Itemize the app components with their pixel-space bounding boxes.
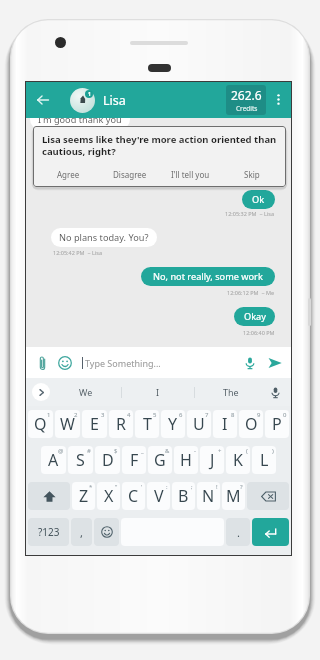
button[interactable]: The — [195, 378, 267, 406]
staticText: We — [79, 386, 93, 398]
button[interactable]: More options — [269, 90, 288, 109]
button[interactable]: X — [97, 482, 120, 510]
staticText: - — [194, 447, 196, 455]
button[interactable]: L — [252, 446, 276, 474]
staticText: O — [245, 413, 258, 435]
button[interactable]: 262.6 — [226, 85, 266, 115]
staticText: ' — [141, 483, 143, 491]
button[interactable]: E — [82, 410, 107, 438]
staticText: ! — [216, 483, 218, 491]
staticText: C — [128, 485, 139, 507]
button[interactable]: Back — [33, 90, 53, 110]
staticText: 12:06:40 PM — [243, 329, 275, 336]
staticText: K — [233, 449, 243, 471]
button[interactable]: F — [122, 446, 146, 474]
button[interactable]: Period — [226, 518, 250, 546]
button[interactable]: R — [109, 410, 133, 438]
button[interactable]: W — [55, 410, 80, 438]
staticText: Type Something... — [85, 357, 161, 369]
staticText: 4 — [127, 411, 131, 419]
button[interactable]: A — [41, 446, 66, 474]
button[interactable]: I — [122, 378, 194, 406]
staticText: # — [87, 447, 91, 455]
button[interactable]: J — [200, 446, 224, 474]
staticText: Disagree — [113, 169, 147, 180]
staticText: A — [48, 449, 59, 471]
button[interactable]: Enter — [252, 518, 289, 546]
staticText: H — [180, 449, 192, 471]
button[interactable]: Attach file — [33, 354, 51, 372]
button[interactable]: Ok — [242, 190, 275, 209]
button[interactable]: S — [68, 446, 93, 474]
button[interactable]: Comma — [71, 518, 92, 546]
staticText: Ok — [252, 193, 265, 206]
staticText: I'm good thank you — [38, 118, 122, 126]
button[interactable]: K — [226, 446, 250, 474]
staticText: U — [193, 413, 205, 435]
staticText: 1 — [88, 91, 91, 98]
staticText: D — [102, 449, 114, 471]
button[interactable]: Backspace — [247, 482, 289, 510]
button[interactable]: C — [122, 482, 145, 510]
button[interactable]: Emoji — [56, 354, 74, 372]
button[interactable]: We — [50, 378, 121, 406]
staticText: Y — [168, 413, 178, 435]
button[interactable]: Emoji — [94, 518, 119, 546]
staticText: No, not really, some work — [153, 270, 263, 283]
staticText: , — [80, 525, 83, 540]
button[interactable]: Skip — [221, 169, 282, 180]
staticText: ( — [246, 447, 248, 455]
staticText: Skip — [244, 169, 260, 180]
staticText: S — [76, 449, 85, 471]
button[interactable]: G — [148, 446, 172, 474]
staticText: The — [223, 386, 239, 398]
button[interactable]: V — [147, 482, 170, 510]
button[interactable]: No plans today. You? — [51, 228, 157, 247]
staticText: @ — [58, 447, 64, 455]
button[interactable]: I'll tell you — [160, 169, 221, 180]
button[interactable]: Send — [266, 354, 284, 372]
button[interactable]: D — [95, 446, 120, 474]
staticText: L — [260, 449, 269, 471]
staticText: R — [116, 413, 126, 435]
button[interactable]: M — [222, 482, 245, 510]
staticText: " — [115, 483, 118, 491]
staticText: Z — [79, 485, 89, 507]
button[interactable]: Voice message — [241, 354, 259, 372]
staticText: Lisa — [103, 92, 126, 109]
button[interactable]: Agree — [37, 169, 99, 180]
button[interactable]: Q — [28, 410, 53, 438]
button[interactable]: Symbols — [28, 518, 69, 546]
staticText: ?123 — [38, 525, 60, 539]
staticText: No plans today. You? — [59, 231, 149, 244]
staticText: P — [272, 413, 282, 435]
staticText: I — [156, 386, 160, 398]
button[interactable]: U — [187, 410, 211, 438]
staticText: M — [226, 485, 241, 507]
button[interactable]: Shift — [28, 482, 70, 510]
staticText: ; — [191, 483, 193, 491]
button[interactable]: B — [172, 482, 195, 510]
button[interactable]: P — [265, 410, 289, 438]
button[interactable]: I — [213, 410, 237, 438]
button[interactable]: O — [239, 410, 263, 438]
button[interactable]: Y — [161, 410, 185, 438]
button[interactable]: Disagree — [99, 169, 160, 180]
staticText: 8 — [231, 411, 235, 419]
staticText: B — [178, 485, 189, 507]
button[interactable]: Z — [72, 482, 95, 510]
button[interactable]: I'm good thank you — [30, 118, 130, 129]
button[interactable]: H — [174, 446, 198, 474]
button[interactable]: T — [135, 410, 159, 438]
staticText: I — [222, 413, 228, 435]
staticText: . — [237, 525, 240, 540]
staticText: 12:05:32 PM ~ Lisa — [225, 210, 275, 217]
button[interactable]: No, not really, some work — [141, 267, 275, 286]
button[interactable]: Okay — [234, 307, 275, 326]
staticText: 7 — [205, 411, 209, 419]
button[interactable]: More suggestions — [32, 383, 50, 401]
button[interactable]: Voice typing — [267, 384, 283, 400]
staticText: Lisa seems like they're more action orie… — [42, 133, 278, 158]
button[interactable]: N — [197, 482, 220, 510]
